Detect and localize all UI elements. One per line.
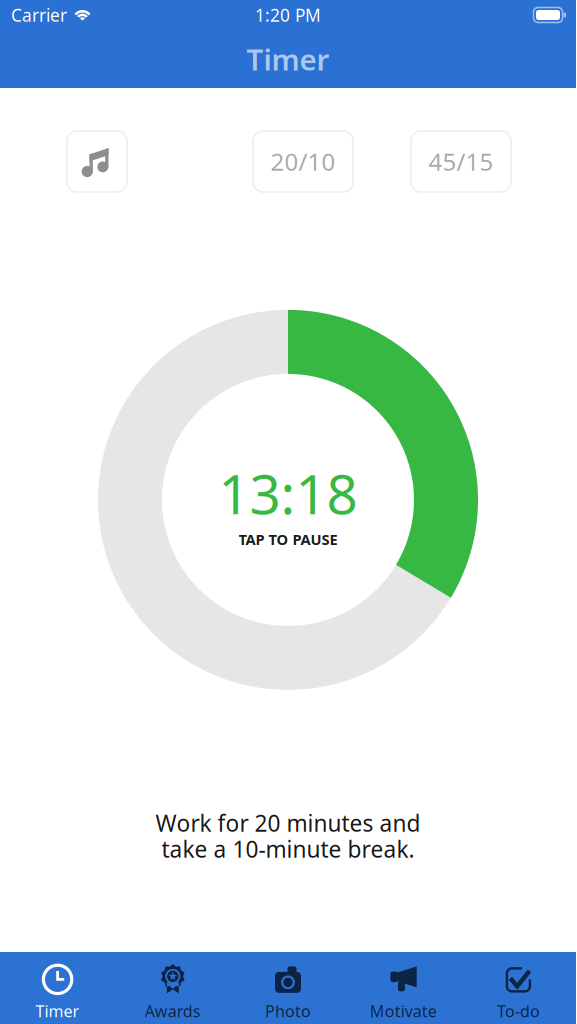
- staticText: Timer: [246, 39, 329, 78]
- staticText: 1:20 PM: [255, 3, 321, 26]
- button[interactable]: To-do: [461, 952, 576, 1024]
- staticText: Awards: [145, 1000, 201, 1022]
- staticText: Photo: [265, 1000, 311, 1022]
- button[interactable]: Timer: [0, 952, 115, 1024]
- button[interactable]: Photo: [230, 952, 346, 1024]
- staticText: 20/10: [270, 146, 335, 177]
- staticText: To-do: [497, 1000, 540, 1022]
- button[interactable]: Music: [67, 131, 127, 192]
- button[interactable]: 20/10: [253, 131, 353, 192]
- button[interactable]: Awards: [115, 952, 230, 1024]
- staticText: Timer: [36, 1000, 80, 1022]
- button[interactable]: Pause timer: [98, 310, 478, 690]
- staticText: take a 10-minute break.: [161, 834, 414, 864]
- staticText: 45/15: [428, 146, 493, 177]
- button[interactable]: Motivate: [346, 952, 461, 1024]
- staticText: 13:18: [218, 457, 357, 529]
- button[interactable]: 45/15: [411, 131, 511, 192]
- staticText: Motivate: [370, 1000, 437, 1022]
- staticText: TAP TO PAUSE: [238, 529, 337, 549]
- staticText: Work for 20 minutes and: [155, 808, 420, 838]
- staticText: Carrier: [11, 3, 67, 26]
